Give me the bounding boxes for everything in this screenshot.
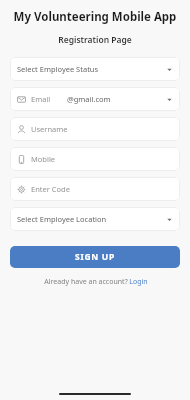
staticText: Registration Page [0,34,190,46]
staticText: SIGN UP [75,251,115,263]
staticText: Login [129,277,148,287]
staticText: Select Employee Location [17,214,107,224]
staticText: My Volunteering Mobile App [0,9,190,25]
button[interactable]: Mobile field [10,147,180,171]
staticText: Enter Code [31,184,70,194]
staticText: Select Employee Status [17,64,99,74]
button[interactable]: Enter Code field [10,177,180,201]
button[interactable]: Username field [10,117,180,141]
button[interactable]: Email domain dropdown [10,87,180,111]
staticText: Already have an account? [43,277,129,287]
staticText: Username [31,124,68,134]
button[interactable]: Select Employee Location dropdown [10,207,180,231]
staticText: Email [31,94,51,104]
staticText: Mobile [31,154,56,164]
staticText: @gmail.com [67,94,111,104]
button[interactable]: SIGN UP [10,246,180,268]
button[interactable]: Select Employee Status dropdown [10,57,180,81]
button[interactable]: Login [129,277,148,287]
